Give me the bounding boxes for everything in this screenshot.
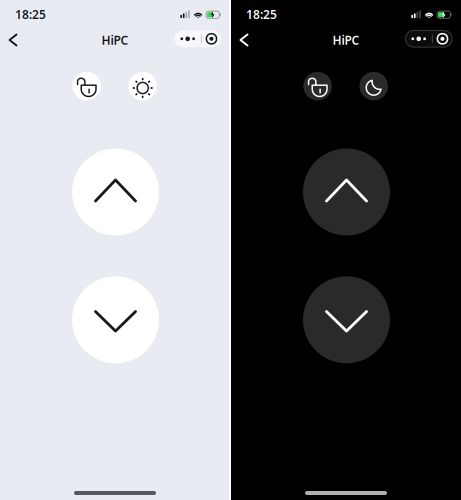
button[interactable]: Back [229,25,259,55]
staticText: HiPC [101,32,128,48]
button[interactable]: Brightness [128,72,157,100]
button[interactable]: Lock [303,72,332,100]
button[interactable]: More [174,30,201,47]
button[interactable]: Down [72,276,159,363]
button[interactable]: Down [303,276,390,363]
button[interactable]: Record [433,30,452,47]
button[interactable]: Dark mode [359,72,388,100]
button[interactable]: Back [0,25,28,55]
staticText: 18:25 [15,6,46,22]
button[interactable]: Up [303,148,390,235]
button[interactable]: Up [72,148,159,235]
staticText: HiPC [332,32,359,48]
button[interactable]: Record [202,30,221,47]
button[interactable]: More [405,30,432,47]
button[interactable]: Lock [72,72,101,100]
staticText: 18:25 [246,6,277,22]
